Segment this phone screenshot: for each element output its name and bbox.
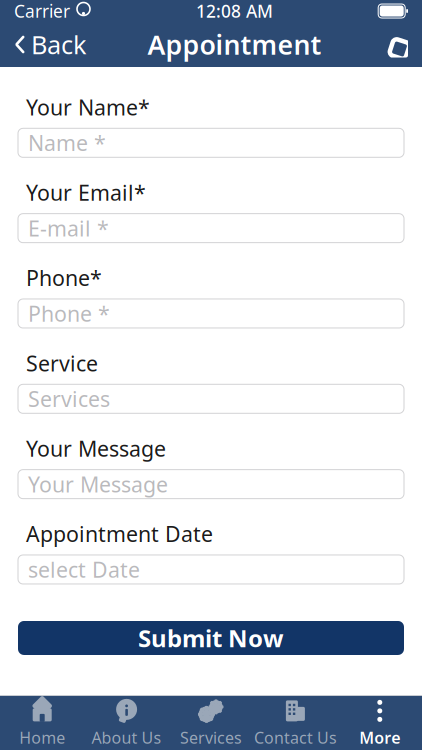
staticText: Phone * [28, 299, 110, 328]
button[interactable]: select Date [18, 555, 404, 584]
button[interactable]: E-mail * [18, 214, 404, 243]
staticText: Phone* [26, 264, 102, 292]
button[interactable]: Services [18, 384, 404, 413]
button[interactable]: Services [169, 696, 253, 750]
staticText: Your Message [28, 470, 168, 498]
staticText: Service [26, 349, 98, 377]
button[interactable]: Back [0, 22, 101, 67]
button[interactable]: About Us [84, 696, 169, 750]
staticText: Appointment Date [26, 520, 213, 548]
staticText: E-mail * [28, 214, 109, 242]
staticText: Submit Now [138, 622, 284, 654]
staticText: More [359, 727, 400, 748]
staticText: select Date [28, 555, 140, 584]
staticText: Home [19, 727, 65, 748]
staticText: Your Name* [26, 93, 150, 121]
button[interactable]: Your Message [18, 470, 404, 499]
staticText: About Us [92, 727, 162, 748]
button[interactable]: Name * [18, 128, 404, 157]
staticText: 12:08 AM [196, 0, 273, 22]
staticText: Back [31, 28, 87, 61]
staticText: Services [180, 727, 242, 748]
button[interactable]: Submit Now [18, 621, 404, 655]
staticText: Appointment [147, 27, 321, 62]
button[interactable]: Contact Us [253, 696, 338, 750]
staticText: Services [28, 385, 110, 413]
button[interactable]: Phone * [18, 299, 404, 328]
staticText: Your Message [26, 434, 166, 463]
staticText: Name * [28, 129, 106, 157]
staticText: Contact Us [254, 727, 337, 748]
button[interactable]: Home [0, 696, 84, 750]
staticText: Your Email* [26, 178, 146, 207]
button[interactable]: Call [368, 22, 422, 67]
staticText: Carrier [14, 0, 70, 22]
button[interactable]: More [338, 696, 422, 750]
